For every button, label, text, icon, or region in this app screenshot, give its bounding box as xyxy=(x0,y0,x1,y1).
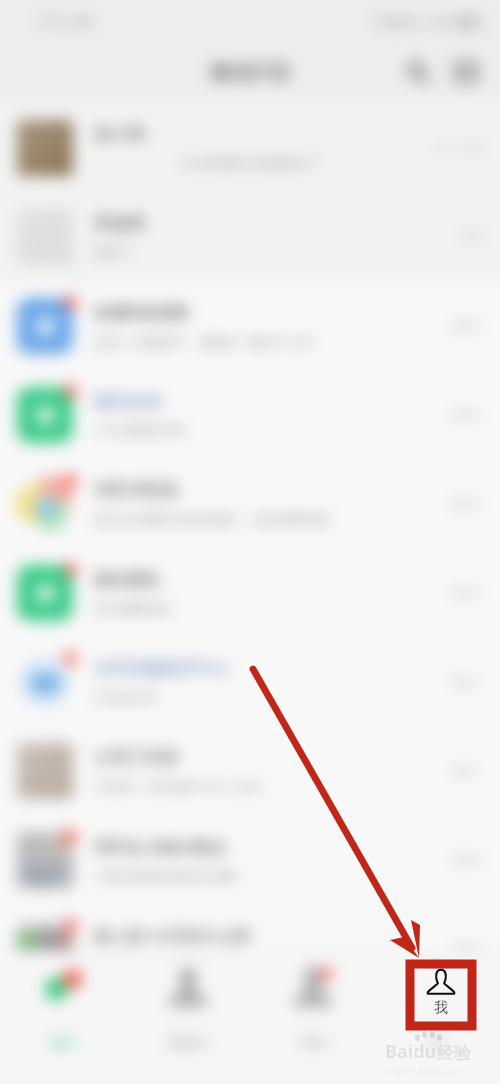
staticText: 收到了 xyxy=(94,244,133,260)
staticText: 微信运动 xyxy=(94,391,162,412)
staticText: 谷歌浏览器 xyxy=(94,479,179,500)
staticText: 李老师 xyxy=(94,213,145,234)
staticText: 今天的资料已经发给你了 xyxy=(178,155,321,171)
button[interactable]: QQ邮箱提醒 xyxy=(0,281,500,370)
staticText: Baidu xyxy=(385,1039,437,1064)
staticText: 公司工作群 xyxy=(94,747,179,768)
button[interactable]: Search xyxy=(398,52,438,92)
button[interactable]: 李老师 xyxy=(0,192,500,281)
button[interactable]: 微信团队 xyxy=(0,548,500,637)
staticText: 妈妈：晚上回家吃饭吗记得回复我 xyxy=(94,957,289,973)
button[interactable]: 发现 xyxy=(250,951,375,1084)
staticText: 张小明 xyxy=(94,124,145,145)
staticText: 同学会 2024 聚会 xyxy=(94,835,227,858)
staticText: 安全提醒消息 xyxy=(94,600,172,616)
button[interactable]: 通讯录 xyxy=(125,951,250,1084)
button[interactable]: 谷歌浏览器 xyxy=(0,459,500,548)
staticText: 今日步数排行榜 xyxy=(94,422,185,438)
staticText: 经验 xyxy=(437,1043,471,1064)
button[interactable]: 我 xyxy=(375,951,500,1084)
button[interactable]: 家人群 今天吃什么呀 xyxy=(0,904,500,993)
button[interactable]: 张小明 xyxy=(0,103,500,192)
staticText: 我 xyxy=(434,999,448,1017)
button[interactable]: 微信运动 xyxy=(0,370,500,459)
button[interactable]: 微信 xyxy=(0,951,125,1084)
staticText: 微信(12) xyxy=(210,57,290,86)
staticText: 微信团队 xyxy=(94,569,162,590)
button[interactable]: 同学会 2024 聚会 xyxy=(0,815,500,904)
staticText: QQ邮箱提醒 xyxy=(94,300,189,323)
button[interactable]: Add xyxy=(446,52,486,92)
button[interactable]: 文件传输助手中心 xyxy=(0,637,500,726)
staticText: 家人群 今天吃什么呀 xyxy=(94,924,252,947)
staticText: 您有一封新邮件 请查收 附件已上传 xyxy=(94,333,313,351)
staticText: 我 xyxy=(431,1034,444,1050)
staticText: 您关注的网页内容有更新 点击查看详情 xyxy=(94,510,329,528)
staticText: 文件传输助手中心 xyxy=(94,658,230,679)
button[interactable]: 我 xyxy=(415,969,467,1021)
button[interactable]: 公司工作群 xyxy=(0,726,500,815)
staticText: 微信 xyxy=(50,1034,76,1050)
